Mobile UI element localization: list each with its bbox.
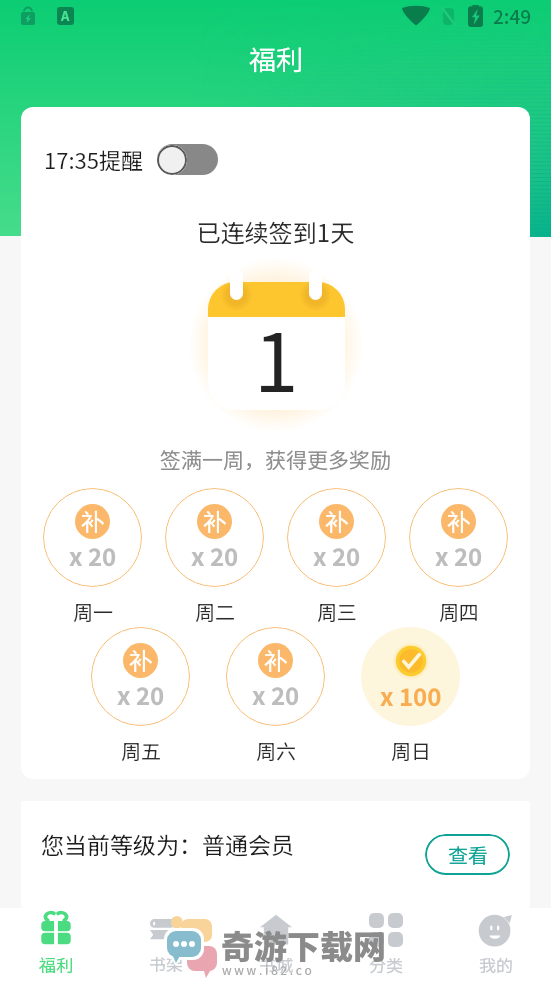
- staticText: 书架: [149, 951, 183, 976]
- staticText: 福利: [249, 39, 303, 78]
- staticText: 书城: [259, 952, 293, 977]
- button[interactable]: Reminder toggle: [157, 144, 218, 175]
- staticText: 17:35提醒: [44, 143, 143, 175]
- button[interactable]: x 100: [361, 627, 460, 726]
- staticText: 查看: [448, 840, 488, 869]
- staticText: 福利: [39, 952, 73, 977]
- staticText: 周六: [256, 736, 296, 765]
- staticText: 补: [447, 504, 471, 538]
- staticText: 2:49: [493, 2, 532, 30]
- staticText: 已连续签到1天: [21, 214, 530, 249]
- button[interactable]: 补: [165, 488, 264, 587]
- staticText: 我的: [479, 952, 513, 977]
- button[interactable]: 补: [226, 627, 325, 726]
- staticText: 周日: [391, 736, 431, 765]
- staticText: 周二: [195, 597, 235, 626]
- button[interactable]: 书城: [221, 908, 331, 981]
- staticText: 补: [264, 643, 288, 677]
- button[interactable]: 福利: [0, 908, 111, 981]
- staticText: 1: [254, 299, 299, 410]
- staticText: x 100: [380, 678, 442, 713]
- button[interactable]: 分类: [331, 908, 441, 981]
- staticText: x 20: [313, 538, 361, 573]
- button[interactable]: 补: [409, 488, 508, 587]
- staticText: w w w . i 8 2 . c o: [222, 961, 312, 978]
- button[interactable]: 补: [287, 488, 386, 587]
- staticText: x 20: [69, 538, 117, 573]
- staticText: 补: [129, 643, 153, 677]
- button[interactable]: 书架: [111, 908, 221, 981]
- staticText: x 20: [117, 677, 165, 712]
- staticText: 补: [81, 504, 105, 538]
- staticText: x 20: [191, 538, 239, 573]
- button[interactable]: 查看: [425, 834, 510, 875]
- staticText: 奇游下载网: [221, 921, 386, 969]
- staticText: 周一: [73, 597, 113, 626]
- staticText: A: [61, 7, 70, 24]
- button[interactable]: 补: [91, 627, 190, 726]
- button[interactable]: 补: [43, 488, 142, 587]
- staticText: 分类: [369, 952, 403, 977]
- staticText: 周三: [317, 597, 357, 626]
- staticText: 周五: [121, 736, 161, 765]
- staticText: x 20: [252, 677, 300, 712]
- button[interactable]: 我的: [441, 908, 551, 981]
- staticText: x 20: [435, 538, 483, 573]
- staticText: 签满一周，获得更多奖励: [21, 444, 530, 474]
- staticText: 您当前等级为：普通会员: [41, 827, 294, 860]
- staticText: 补: [325, 504, 349, 538]
- staticText: 周四: [439, 597, 479, 626]
- staticText: 补: [203, 504, 227, 538]
